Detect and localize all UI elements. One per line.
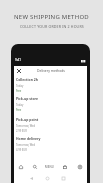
button[interactable]: Home bbox=[39, 174, 55, 183]
staticText: Delivery methods bbox=[37, 68, 65, 73]
button[interactable]: Close bbox=[15, 67, 22, 74]
staticText: Free bbox=[16, 89, 22, 93]
staticText: Pick-up point bbox=[16, 117, 39, 122]
button[interactable]: Profile bbox=[72, 161, 87, 173]
staticText: Tomorrow, Wed bbox=[16, 143, 36, 147]
staticText: ▮▮▮ bbox=[81, 59, 86, 62]
staticText: NEW SHIPPING METHOD bbox=[14, 13, 89, 21]
button[interactable]: Search bbox=[28, 161, 42, 173]
staticText: Free bbox=[16, 108, 22, 112]
staticText: Pick-up store bbox=[16, 96, 39, 101]
staticText: Today bbox=[16, 103, 24, 107]
button[interactable]: Recents bbox=[55, 174, 71, 183]
staticText: 2.99 EUR bbox=[16, 129, 27, 133]
button[interactable]: Pick-up point bbox=[14, 114, 87, 133]
button[interactable]: MENU bbox=[42, 161, 57, 173]
staticText: 9:41 bbox=[15, 58, 21, 62]
button[interactable]: Home delivery bbox=[14, 133, 87, 152]
staticText: MENU bbox=[45, 165, 55, 169]
staticText: Home delivery bbox=[16, 136, 41, 141]
staticText: COLLECT YOUR ORDER IN 2 HOURS bbox=[20, 24, 84, 29]
staticText: Today bbox=[16, 84, 24, 88]
button[interactable]: Back bbox=[24, 174, 39, 183]
staticText: 4.99 EUR bbox=[16, 148, 27, 152]
staticText: Collection 2h bbox=[16, 77, 38, 82]
staticText: Tomorrow, Wed bbox=[16, 124, 36, 128]
button[interactable]: Pick-up store bbox=[14, 93, 87, 114]
button[interactable]: Collection 2h bbox=[14, 74, 87, 93]
button[interactable]: Bag bbox=[57, 161, 72, 173]
button[interactable]: Home bbox=[14, 161, 28, 173]
